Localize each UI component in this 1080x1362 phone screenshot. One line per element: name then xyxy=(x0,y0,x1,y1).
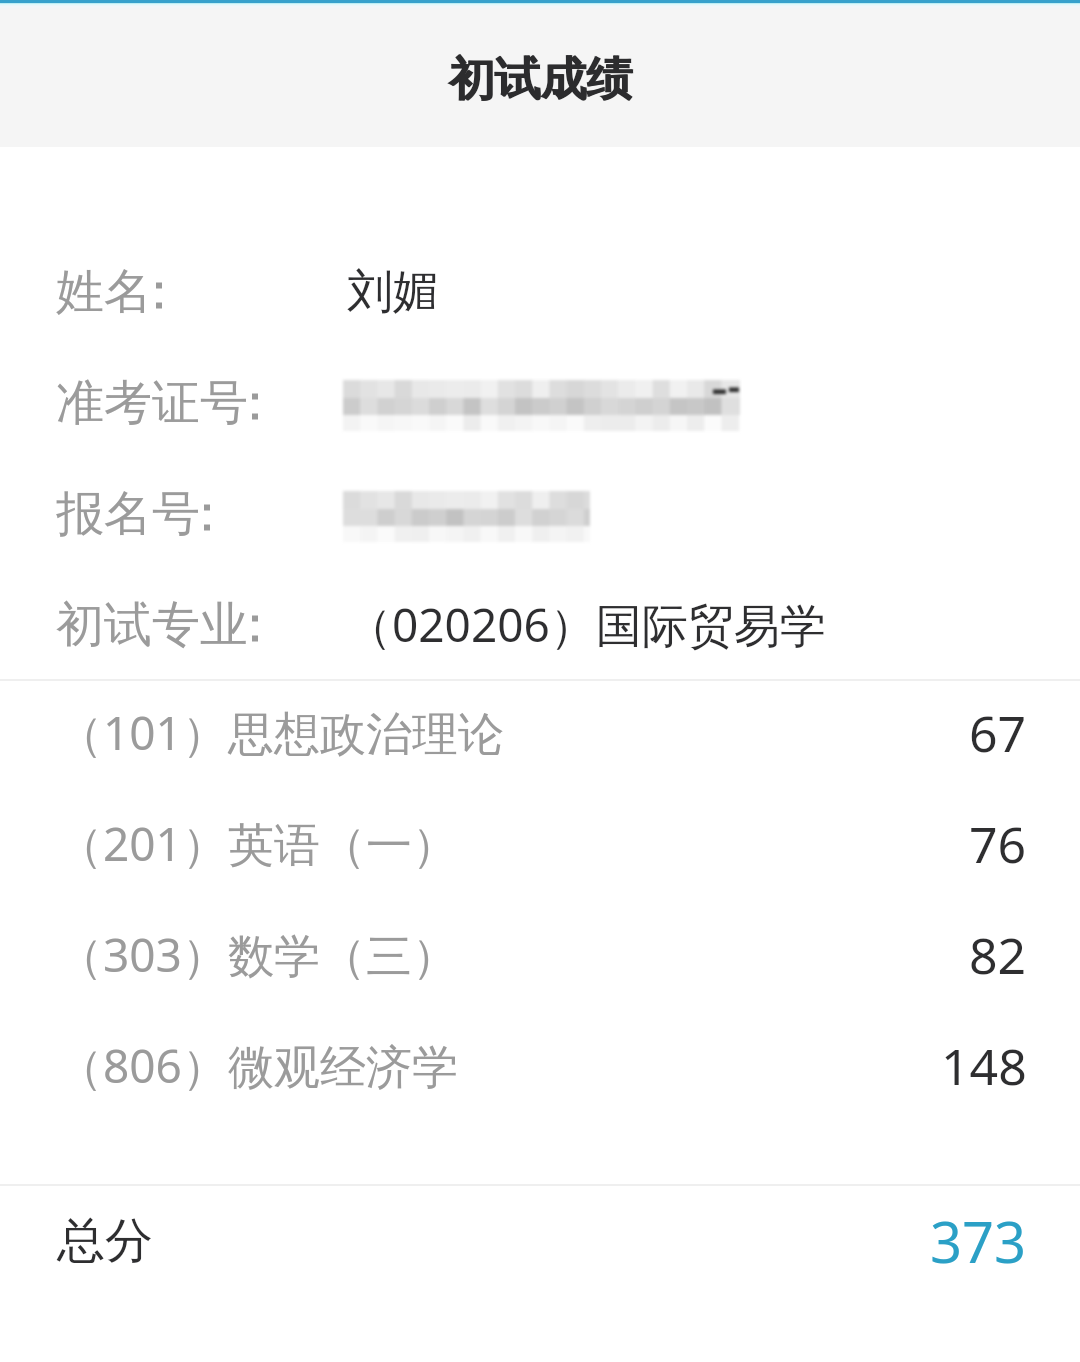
button[interactable]: （101）思想政治理论 xyxy=(0,677,1080,788)
staticText: 初试成绩 xyxy=(449,51,633,109)
staticText: 148 xyxy=(941,1032,1027,1100)
staticText: 姓名 xyxy=(56,262,152,322)
staticText: （303）数学（三） xyxy=(57,923,458,986)
staticText: 76 xyxy=(969,810,1027,878)
button[interactable]: 准考证号 xyxy=(0,347,1080,458)
button[interactable]: 初试专业 xyxy=(0,569,1080,680)
staticText: 刘媚 xyxy=(347,263,439,321)
staticText: （101）思想政治理论 xyxy=(57,701,504,764)
button[interactable]: 初试成绩 xyxy=(448,51,632,109)
staticText: 总分 xyxy=(57,1211,153,1271)
staticText: （020206）国际贸易学 xyxy=(346,593,826,656)
button[interactable]: （806）微观经济学 xyxy=(0,1010,1080,1121)
staticText: 373 xyxy=(930,1203,1027,1279)
staticText: （806）微观经济学 xyxy=(57,1034,458,1097)
staticText: 报名号 xyxy=(56,484,200,544)
button[interactable]: （303）数学（三） xyxy=(0,899,1080,1010)
button[interactable]: （201）英语（一） xyxy=(0,788,1080,899)
button[interactable]: 总分 xyxy=(0,1181,1080,1301)
staticText: （201）英语（一） xyxy=(57,812,458,875)
staticText: 初试专业 xyxy=(56,595,248,655)
staticText: 初试成绩 xyxy=(448,51,632,109)
button[interactable]: 报名号 xyxy=(0,458,1080,569)
staticText: 准考证号 xyxy=(56,373,248,433)
staticText: 67 xyxy=(969,699,1027,767)
staticText: 82 xyxy=(969,921,1027,989)
button[interactable]: 姓名 xyxy=(0,236,1080,347)
